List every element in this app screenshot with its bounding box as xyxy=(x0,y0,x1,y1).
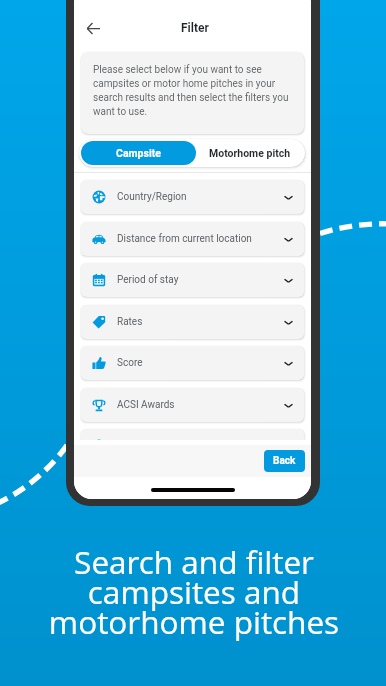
button[interactable]: Facilities xyxy=(81,429,304,440)
staticText: Filter xyxy=(181,21,209,35)
button[interactable]: Distance from current location xyxy=(81,222,304,256)
staticText: Country/Region xyxy=(117,191,187,203)
button[interactable]: Back xyxy=(264,450,305,472)
button[interactable]: Period of stay xyxy=(81,263,304,297)
button[interactable]: Country/Region xyxy=(81,180,304,214)
staticText: Distance from current location xyxy=(117,233,252,245)
staticText: Search and filter campsites and motorhom… xyxy=(1,540,386,643)
button[interactable]: Score xyxy=(81,346,304,380)
button[interactable]: Motorhome pitch xyxy=(196,141,303,165)
staticText: Campsite xyxy=(116,147,161,159)
button[interactable]: Campsite xyxy=(81,141,196,165)
staticText: Back xyxy=(273,455,296,467)
staticText: ACSI Awards xyxy=(117,399,175,411)
staticText: Score xyxy=(117,357,143,369)
button[interactable]: ACSI Awards xyxy=(81,388,304,422)
staticText: Motorhome pitch xyxy=(209,147,291,159)
staticText: Please select below if you want to see c… xyxy=(93,64,290,118)
staticText: Rates xyxy=(117,316,143,328)
button[interactable]: Back xyxy=(80,15,106,41)
button[interactable]: Rates xyxy=(81,305,304,339)
staticText: Period of stay xyxy=(117,274,179,286)
